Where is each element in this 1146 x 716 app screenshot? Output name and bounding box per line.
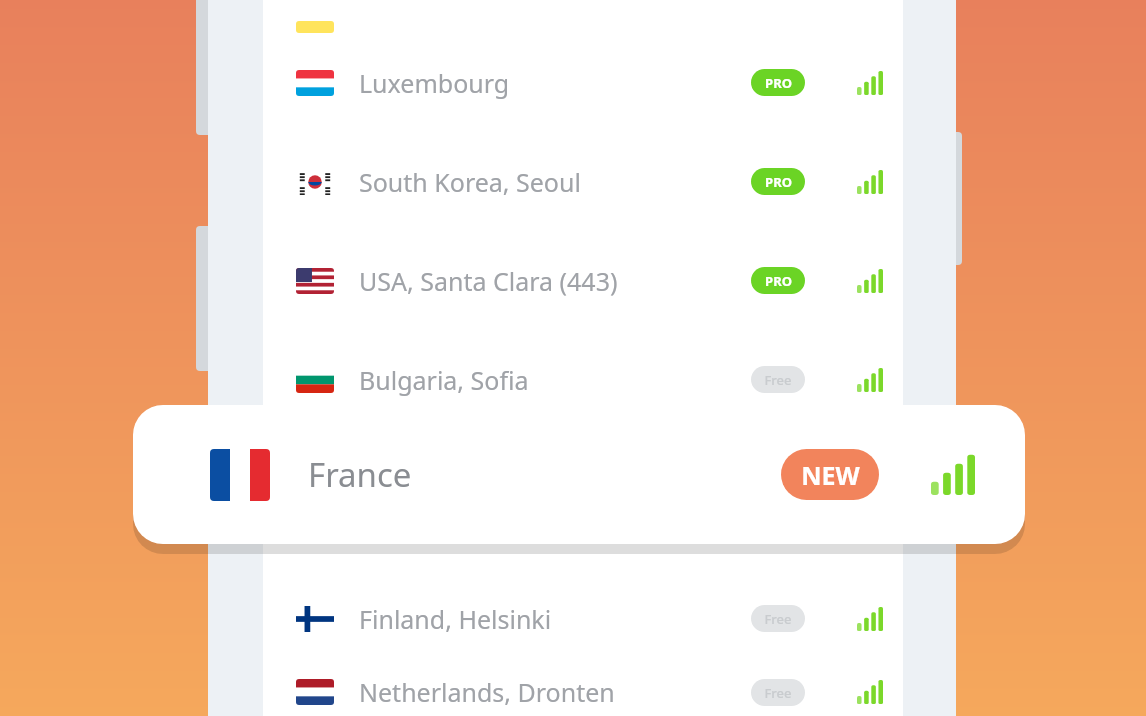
staticText: Finland, Helsinki: [359, 602, 552, 636]
staticText: PRO: [765, 74, 792, 92]
button[interactable]: Bulgaria, Sofia: [263, 330, 903, 429]
staticText: Free: [764, 371, 792, 389]
button[interactable]: [263, 0, 903, 33]
button[interactable]: Finland, Helsinki: [263, 569, 903, 668]
staticText: PRO: [765, 173, 792, 191]
staticText: Free: [764, 684, 792, 702]
staticText: Luxembourg: [359, 66, 510, 100]
staticText: France: [308, 452, 412, 497]
staticText: Bulgaria, Sofia: [359, 363, 529, 397]
button[interactable]: Netherlands, Dronten: [263, 668, 903, 716]
staticText: PRO: [765, 272, 792, 290]
staticText: NEW: [801, 458, 860, 492]
button[interactable]: Luxembourg: [263, 33, 903, 132]
button[interactable]: South Korea, Seoul: [263, 132, 903, 231]
staticText: Free: [764, 610, 792, 628]
staticText: South Korea, Seoul: [359, 165, 581, 199]
button[interactable]: USA, Santa Clara (443): [263, 231, 903, 330]
staticText: Netherlands, Dronten: [359, 675, 615, 709]
button[interactable]: France: [133, 405, 1025, 544]
staticText: USA, Santa Clara (443): [359, 264, 618, 298]
